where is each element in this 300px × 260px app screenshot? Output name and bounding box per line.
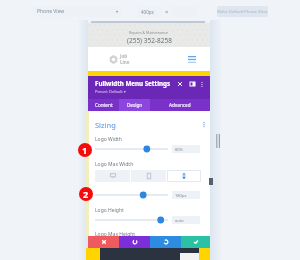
staticText: Line	[120, 59, 130, 65]
button[interactable]: More options	[197, 79, 207, 89]
staticText: 180px	[175, 193, 187, 198]
button[interactable]: Undo	[119, 236, 150, 248]
button[interactable]: Tablet	[131, 170, 166, 182]
staticText: Design	[127, 102, 143, 108]
button[interactable]: Redo	[150, 236, 181, 248]
button[interactable]: Expand panel	[187, 79, 197, 89]
button[interactable]: Design	[119, 99, 150, 111]
button[interactable]: Content	[88, 99, 119, 111]
staticText: Logo Width	[95, 136, 122, 143]
button[interactable]: Save	[181, 236, 210, 248]
button[interactable]: 80%	[172, 145, 200, 153]
staticText: ×	[165, 8, 169, 16]
button[interactable]: Section options	[201, 120, 207, 128]
staticText: Logo Max Width	[95, 161, 134, 168]
button[interactable]: Advanced	[150, 99, 210, 111]
staticText: Logo Max Height	[95, 231, 136, 238]
staticText: 1	[82, 144, 88, 156]
staticText: Make Default Phone View	[217, 9, 268, 15]
staticText: Sizing	[95, 120, 116, 130]
staticText: 2	[83, 188, 89, 200]
staticText: 80%	[175, 147, 183, 152]
button[interactable]: Desktop	[95, 170, 130, 182]
staticText: auto	[175, 218, 184, 223]
staticText: Advanced	[169, 102, 191, 108]
button[interactable]: Phone	[167, 170, 201, 182]
staticText: Preset: Default ▾	[95, 89, 126, 94]
button[interactable]: Cancel	[88, 236, 119, 248]
staticText: Content	[95, 102, 113, 108]
staticText: 400px	[141, 9, 154, 15]
button[interactable]: Close	[175, 79, 185, 89]
staticText: ▾	[116, 9, 119, 14]
staticText: (255) 352-8258	[127, 36, 172, 45]
button[interactable]: Phone View	[33, 6, 122, 17]
button[interactable]: Menu	[188, 47, 196, 71]
button[interactable]: 400px	[138, 6, 162, 17]
staticText: Logo Height	[95, 207, 124, 214]
staticText: Phone View	[37, 8, 65, 15]
button[interactable]: auto	[172, 216, 200, 224]
staticText: Repairs & Maintenance	[129, 30, 169, 35]
staticText: Fullwidth Menu Settings	[95, 79, 171, 87]
button[interactable]: Make Default Phone View	[217, 6, 268, 17]
staticText: Job	[120, 53, 128, 59]
button[interactable]: 180px	[172, 191, 200, 199]
